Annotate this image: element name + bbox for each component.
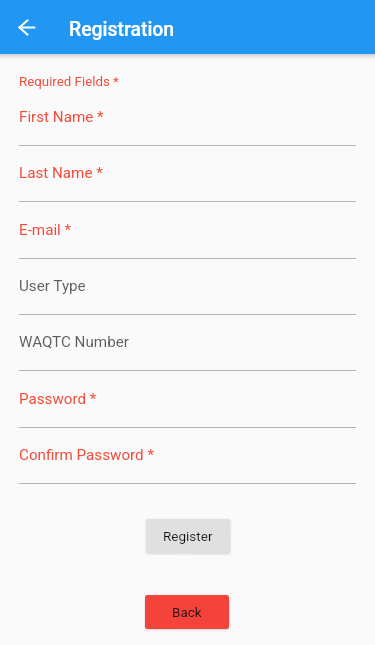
staticText: First Name * [19, 108, 104, 126]
staticText: Required Fields * [19, 74, 119, 90]
staticText: Last Name * [19, 164, 103, 182]
button[interactable]: Register [146, 519, 230, 553]
button[interactable]: Password * [19, 380, 356, 428]
button[interactable]: First Name * [19, 98, 356, 146]
button[interactable]: WAQTC Number [19, 323, 356, 371]
button[interactable]: Navigate up [0, 0, 54, 54]
staticText: Register [163, 528, 213, 544]
button[interactable]: User Type [19, 267, 356, 315]
button[interactable]: E-mail * [19, 211, 356, 259]
staticText: WAQTC Number [19, 333, 129, 351]
staticText: User Type [19, 277, 86, 295]
button[interactable]: Back [145, 595, 229, 629]
staticText: Back [172, 604, 202, 620]
button[interactable]: Confirm Password * [19, 436, 356, 484]
staticText: Password * [19, 390, 97, 408]
button[interactable]: Last Name * [19, 154, 356, 202]
staticText: E-mail * [19, 221, 72, 239]
staticText: Registration [69, 18, 175, 41]
staticText: Confirm Password * [19, 446, 154, 464]
